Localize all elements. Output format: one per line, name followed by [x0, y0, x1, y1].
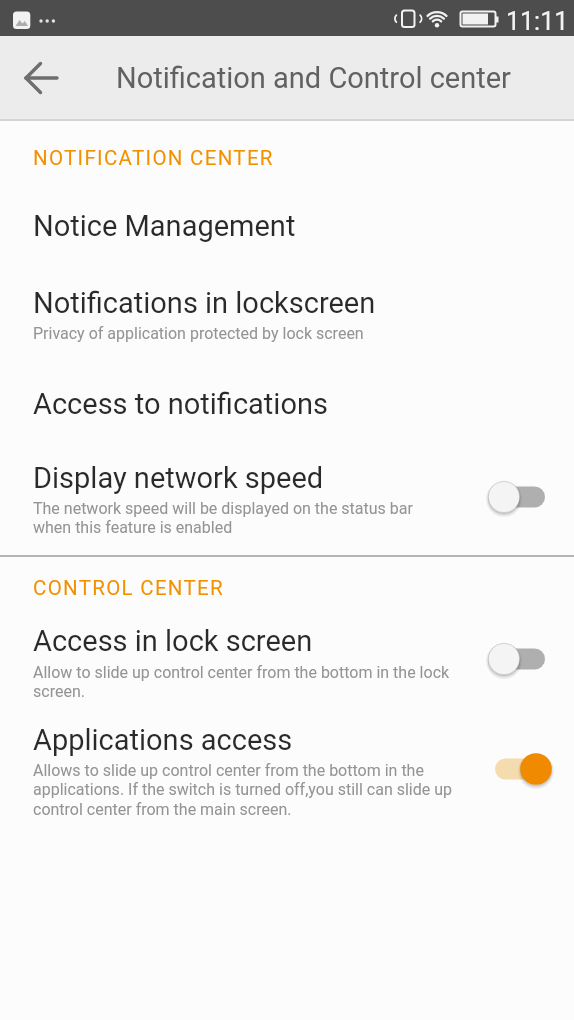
staticText: control center from the main screen.	[33, 800, 292, 819]
staticText: Allow to slide up control center from th…	[33, 663, 450, 682]
staticText: applications. If the switch is turned of…	[33, 780, 453, 799]
staticText: Applications access	[33, 723, 293, 757]
staticText: Access to notifications	[33, 387, 328, 421]
staticText: when this feature is enabled	[33, 518, 233, 537]
staticText: 11:11	[506, 7, 569, 36]
staticText: NOTIFICATION CENTER	[33, 146, 274, 170]
staticText: Display network speed	[33, 461, 324, 495]
staticText: Notifications in lockscreen	[33, 286, 376, 320]
staticText: screen.	[33, 682, 85, 701]
staticText: The network speed will be displayed on t…	[33, 499, 413, 518]
staticText: CONTROL CENTER	[33, 576, 224, 600]
staticText: Allows to slide up control center from t…	[33, 761, 424, 780]
staticText: Notification and Control center	[116, 61, 511, 95]
staticText: Access in lock screen	[33, 624, 313, 658]
staticText: Privacy of application protected by lock…	[33, 324, 364, 343]
staticText: Notice Management	[33, 209, 296, 243]
